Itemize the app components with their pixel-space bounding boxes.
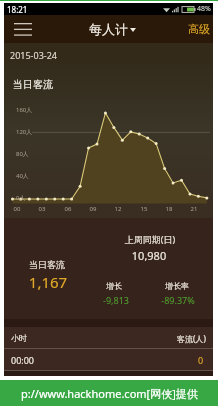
- staticText: 上周同期(日): [110, 233, 190, 245]
- staticText: 18: [162, 205, 176, 213]
- staticText: 1,167: [8, 272, 88, 292]
- staticText: 21: [187, 205, 201, 213]
- staticText: 09: [86, 205, 100, 213]
- staticText: 48%: [197, 4, 211, 14]
- staticText: 小时: [11, 333, 27, 343]
- staticText: 40人: [16, 172, 29, 180]
- staticText: 客流(人): [177, 333, 206, 344]
- staticText: 00: [10, 205, 24, 213]
- staticText: 160人: [16, 106, 33, 114]
- staticText: -89.37%: [138, 294, 218, 306]
- staticText: 120人: [16, 128, 33, 136]
- staticText: 15: [137, 205, 151, 213]
- staticText: 当日客流: [7, 259, 87, 270]
- staticText: 当日客流: [13, 78, 53, 91]
- staticText: 增长: [74, 281, 154, 291]
- staticText: 12: [111, 205, 125, 213]
- staticText: 0: [198, 354, 204, 366]
- button[interactable]: 高级: [180, 15, 213, 43]
- staticText: 00:00: [11, 354, 35, 366]
- staticText: p://www.hackhome.com[网侠]提供: [21, 386, 198, 401]
- staticText: 0人: [16, 194, 26, 202]
- staticText: 高级: [188, 22, 210, 36]
- staticText: 增长率: [137, 281, 217, 291]
- staticText: 06: [61, 205, 75, 213]
- staticText: 2015-03-24: [10, 49, 57, 61]
- staticText: 每人计: [89, 21, 128, 37]
- staticText: 10,980: [109, 248, 189, 263]
- staticText: 03: [35, 205, 49, 213]
- button[interactable]: Menu: [4, 15, 42, 43]
- button[interactable]: 每人计: [89, 21, 136, 37]
- staticText: -9,813: [76, 294, 156, 306]
- staticText: 80人: [16, 150, 29, 158]
- button[interactable]: 00:00: [4, 349, 213, 371]
- staticText: 18:21: [7, 4, 28, 15]
